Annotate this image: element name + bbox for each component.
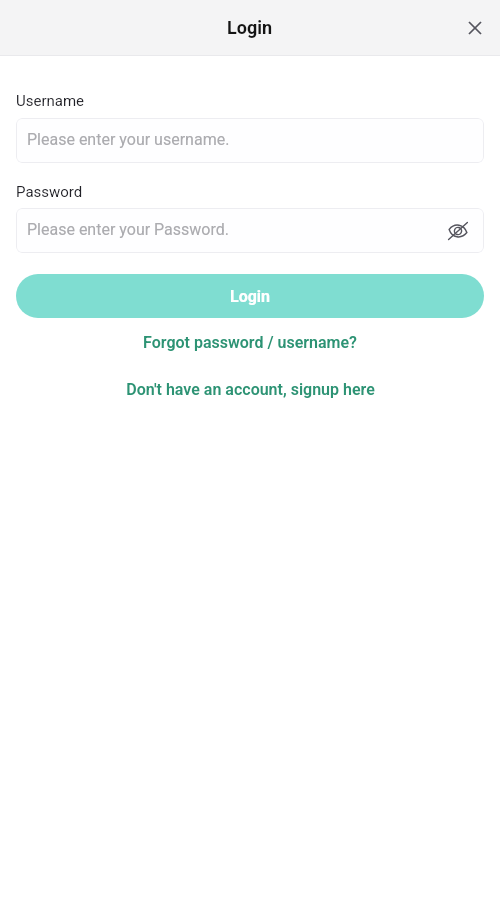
- staticText: Forgot password / username?: [143, 333, 357, 352]
- button[interactable]: Please enter your username.: [16, 118, 484, 163]
- staticText: Please enter your username.: [27, 130, 230, 149]
- staticText: Please enter your Password.: [27, 220, 229, 239]
- staticText: Password: [16, 183, 83, 201]
- staticText: Username: [16, 92, 85, 110]
- button[interactable]: Show password: [441, 214, 475, 248]
- staticText: Login: [227, 17, 273, 38]
- button[interactable]: Login: [16, 274, 484, 318]
- button[interactable]: Don't have an account, signup here: [16, 380, 484, 399]
- button[interactable]: Please enter your Password.: [16, 208, 484, 253]
- button[interactable]: Forgot password / username?: [16, 333, 484, 352]
- staticText: Login: [230, 287, 271, 306]
- staticText: Don't have an account, signup here: [126, 380, 375, 399]
- button[interactable]: Close: [453, 6, 497, 50]
